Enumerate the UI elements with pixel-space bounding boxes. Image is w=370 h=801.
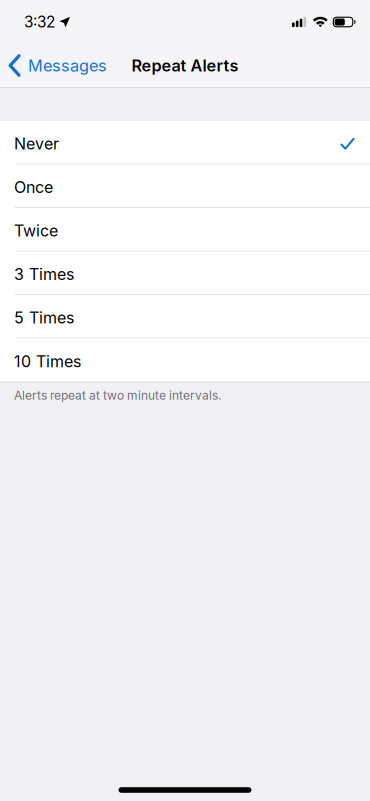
button[interactable]: 3 Times xyxy=(0,251,370,295)
staticText: Twice xyxy=(14,221,58,240)
staticText: Never xyxy=(14,134,59,153)
button[interactable]: Never xyxy=(0,121,370,164)
staticText: 10 Times xyxy=(14,352,81,371)
staticText: Alerts repeat at two minute intervals. xyxy=(14,388,221,403)
button[interactable]: 10 Times xyxy=(0,338,370,382)
button[interactable]: 5 Times xyxy=(0,295,370,338)
button[interactable]: Twice xyxy=(0,208,370,251)
staticText: Once xyxy=(14,177,53,197)
staticText: 3 Times xyxy=(14,264,74,284)
button[interactable]: Messages xyxy=(0,50,115,81)
staticText: Repeat Alerts xyxy=(131,56,238,75)
staticText: 3:32 xyxy=(24,13,55,31)
staticText: 5 Times xyxy=(14,308,74,327)
button[interactable]: Once xyxy=(0,164,370,208)
staticText: Messages xyxy=(28,56,107,75)
